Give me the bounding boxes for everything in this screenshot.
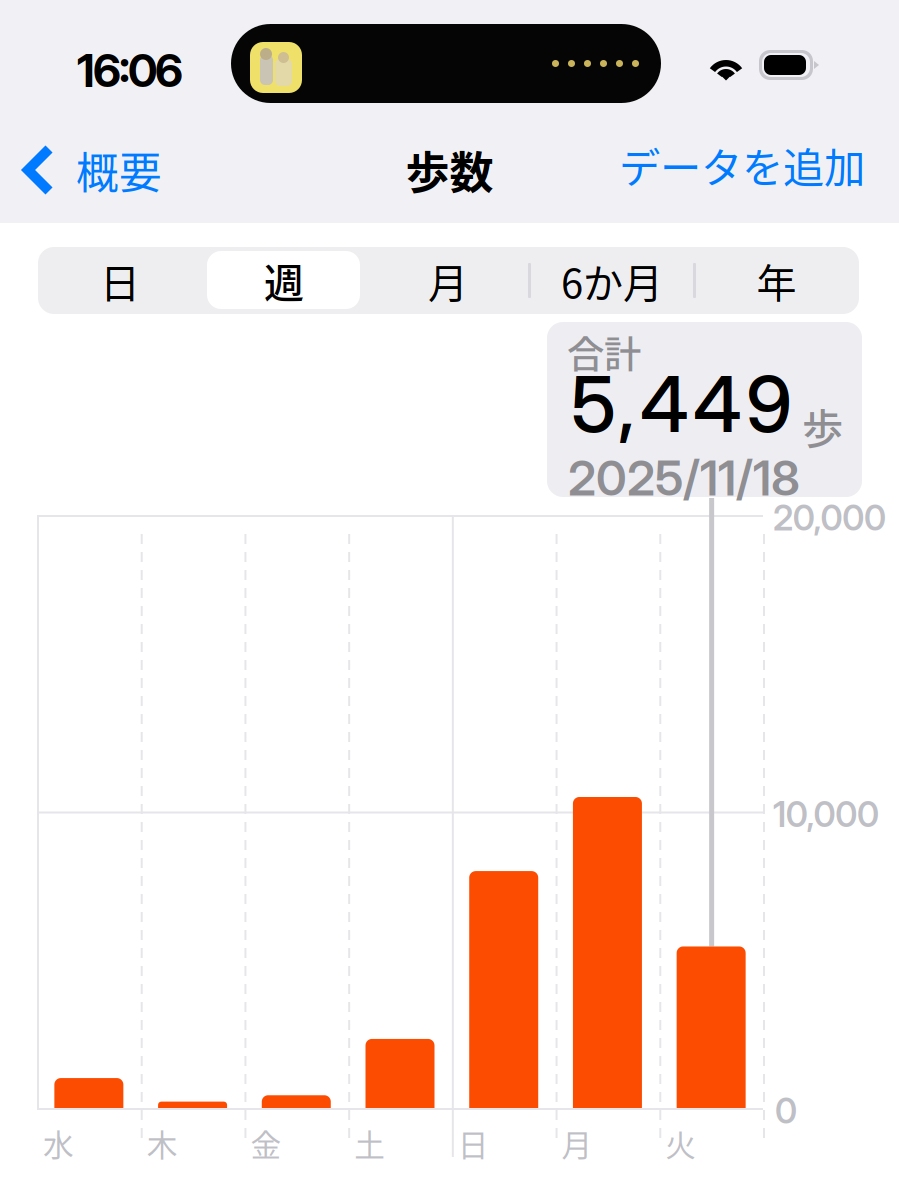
staticText: 10,000 bbox=[773, 793, 879, 835]
staticText: 木 bbox=[147, 1121, 178, 1165]
staticText: 水 bbox=[43, 1121, 74, 1165]
button[interactable]: 月 bbox=[366, 247, 530, 314]
button[interactable]: 年 bbox=[694, 247, 859, 314]
staticText: 年 bbox=[756, 251, 796, 309]
staticText: 月 bbox=[428, 251, 468, 309]
staticText: 月 bbox=[562, 1121, 593, 1165]
staticText: 日 bbox=[100, 251, 140, 309]
staticText: 週 bbox=[264, 251, 304, 309]
staticText: 概要 bbox=[76, 139, 162, 201]
button[interactable]: データを追加 bbox=[619, 127, 865, 203]
button[interactable]: 6か月 bbox=[530, 247, 694, 314]
staticText: 金 bbox=[250, 1121, 281, 1165]
button[interactable]: 週 bbox=[202, 247, 366, 314]
staticText: 火 bbox=[665, 1121, 696, 1165]
staticText: 2025/11/18 bbox=[568, 449, 800, 507]
staticText: 合計 bbox=[567, 325, 641, 379]
button[interactable]: 日 bbox=[38, 247, 202, 314]
staticText: 歩数 bbox=[405, 138, 493, 202]
staticText: 16:06 bbox=[77, 43, 183, 98]
staticText: 歩 bbox=[802, 396, 843, 456]
staticText: 土 bbox=[354, 1121, 385, 1165]
staticText: データを追加 bbox=[619, 135, 865, 195]
staticText: 6か月 bbox=[561, 251, 663, 309]
staticText: 日 bbox=[458, 1121, 489, 1165]
staticText: 20,000 bbox=[773, 497, 886, 539]
button[interactable]: 概要 bbox=[22, 139, 162, 201]
staticText: 5,449 bbox=[571, 357, 792, 451]
staticText: 0 bbox=[775, 1090, 797, 1132]
